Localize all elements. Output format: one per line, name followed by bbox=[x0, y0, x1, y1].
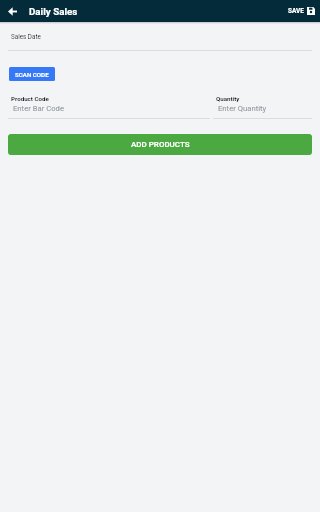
button[interactable]: Back bbox=[4, 3, 20, 19]
button[interactable]: ADD PRODUCTS bbox=[8, 134, 312, 155]
staticText: Enter Quantity bbox=[218, 104, 267, 113]
button[interactable]: SCAN CODE bbox=[9, 67, 55, 81]
staticText: SAVE bbox=[288, 7, 304, 15]
staticText: Daily Sales bbox=[29, 6, 78, 17]
staticText: SCAN CODE bbox=[15, 71, 49, 78]
button[interactable]: SAVE bbox=[288, 7, 315, 15]
staticText: Enter Bar Code bbox=[13, 104, 65, 113]
staticText: ADD PRODUCTS bbox=[131, 140, 190, 149]
staticText: Product Code bbox=[11, 95, 49, 102]
other: Save bbox=[307, 7, 315, 15]
staticText: Quantity bbox=[216, 95, 240, 102]
staticText: Sales Date bbox=[11, 33, 41, 40]
